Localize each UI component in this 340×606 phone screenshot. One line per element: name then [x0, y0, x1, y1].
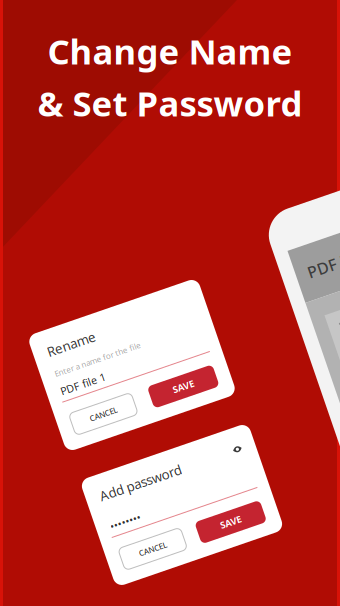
staticText: CANCEL: [74, 397, 103, 407]
button[interactable]: CANCEL: [107, 525, 173, 548]
staticText: Enter a name for the file: [56, 343, 147, 354]
staticText: Change Name: [47, 28, 292, 74]
staticText: & Set Password: [37, 80, 302, 126]
staticText: SAVE: [211, 531, 233, 543]
button[interactable]: SAVE: [139, 390, 208, 413]
button[interactable]: CANCEL: [56, 390, 122, 413]
staticText: SAVE: [162, 396, 184, 408]
staticText: ••••••••: [107, 495, 139, 509]
staticText: PDF file 1: [56, 360, 103, 374]
staticText: CANCEL: [125, 532, 154, 542]
staticText: PDF Reader: [338, 238, 340, 259]
staticText: Rename: [56, 316, 107, 334]
staticText: Add password: [107, 461, 193, 479]
button[interactable]: SAVE: [188, 525, 257, 548]
